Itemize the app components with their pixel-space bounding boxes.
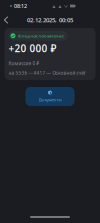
button[interactable]: Назад <box>0 12 12 27</box>
staticText: 08:12 <box>14 2 27 10</box>
staticText: на 5536 ···· 4417 — Основной счёт <box>8 70 85 76</box>
staticText: Комиссия 0 ₽ <box>8 60 39 67</box>
staticText: 02.12.2025, 00:05 <box>27 16 73 24</box>
staticText: +20 000 ₽ <box>8 42 56 55</box>
staticText: Документы <box>38 97 61 102</box>
button[interactable]: Документы <box>25 87 74 106</box>
staticText: Успешное пополнение <box>17 33 63 39</box>
